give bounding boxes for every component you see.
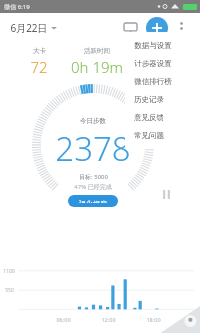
staticText: 今日步数 <box>80 117 106 125</box>
button[interactable]: 6月22日 <box>8 19 59 37</box>
button[interactable]: 强化燃脂 <box>68 195 118 207</box>
staticText: 18:00 <box>146 316 161 323</box>
staticText: 12:00 <box>101 316 116 323</box>
staticText: 550 <box>5 287 14 294</box>
staticText: 强化燃脂 <box>79 199 107 203</box>
staticText: 0h 19m <box>71 57 123 77</box>
button[interactable]: Add <box>146 17 168 39</box>
staticText: 大卡 <box>33 47 46 55</box>
staticText: 目标: 5000 <box>79 173 108 181</box>
button[interactable]: 活跃时间 <box>64 47 130 77</box>
staticText: 历史记录 <box>134 95 164 104</box>
button[interactable]: More options <box>170 17 192 39</box>
staticText: 意见反馈 <box>134 113 164 122</box>
button[interactable]: 常见问题 <box>125 126 198 144</box>
staticText: 06:00 <box>56 316 71 323</box>
button[interactable]: 意见反馈 <box>125 108 198 126</box>
staticText: 活跃时间 <box>84 47 110 55</box>
staticText: 数据与设置 <box>134 41 172 50</box>
staticText: 1100 <box>3 268 15 275</box>
staticText: 72 <box>30 57 48 77</box>
staticText: 计步器设置 <box>134 59 172 68</box>
button[interactable]: Messages <box>118 16 142 40</box>
staticText: 2378 <box>55 126 131 171</box>
staticText: 47% 已经完成 <box>74 183 112 191</box>
staticText: 微信 6:19 <box>4 3 30 11</box>
staticText: 微信排行榜 <box>134 77 172 86</box>
staticText: 6月22日 <box>10 21 48 35</box>
button[interactable]: Map <box>152 303 200 333</box>
button[interactable]: 数据与设置 <box>125 36 198 54</box>
button[interactable]: 微信排行榜 <box>125 72 198 90</box>
button[interactable]: 大卡 <box>14 47 64 77</box>
staticText: 常见问题 <box>134 131 164 140</box>
button[interactable]: Pause <box>157 185 175 203</box>
button[interactable]: 历史记录 <box>125 90 198 108</box>
button[interactable]: 计步器设置 <box>125 54 198 72</box>
